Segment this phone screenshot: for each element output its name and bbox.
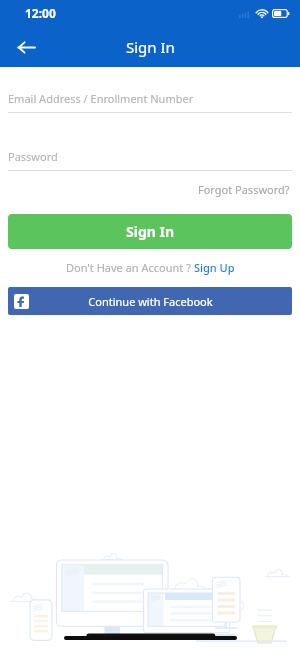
staticText: Don't Have an Account ? — [66, 260, 191, 275]
button[interactable]: Back — [7, 28, 45, 66]
staticText: Sign In — [126, 222, 175, 241]
staticText: Sign In — [126, 37, 175, 57]
staticText: Password — [8, 149, 58, 164]
button[interactable]: Sign In — [8, 214, 292, 249]
button[interactable]: Forgot Password? — [196, 180, 292, 199]
staticText: Sign Up — [194, 260, 235, 275]
staticText: Email Address / Enrollment Number — [8, 91, 194, 106]
button[interactable]: Password — [8, 142, 292, 171]
staticText: Continue with Facebook — [88, 294, 213, 309]
button[interactable]: Continue with Facebook — [8, 287, 292, 315]
button[interactable]: Email Address / Enrollment Number — [8, 84, 292, 113]
button[interactable]: Sign Up — [194, 260, 235, 275]
staticText: Forgot Password? — [198, 182, 290, 197]
staticText: 12:00 — [25, 5, 56, 21]
